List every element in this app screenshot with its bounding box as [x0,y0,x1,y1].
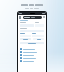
button[interactable] [20,60,44,62]
button[interactable] [20,48,44,50]
button[interactable] [33,38,44,40]
button[interactable]: Menu [19,16,22,19]
button[interactable] [20,51,44,53]
button[interactable] [20,42,44,44]
button[interactable] [20,57,44,59]
button[interactable] [20,38,31,40]
button[interactable] [20,54,44,56]
button[interactable] [23,16,42,19]
